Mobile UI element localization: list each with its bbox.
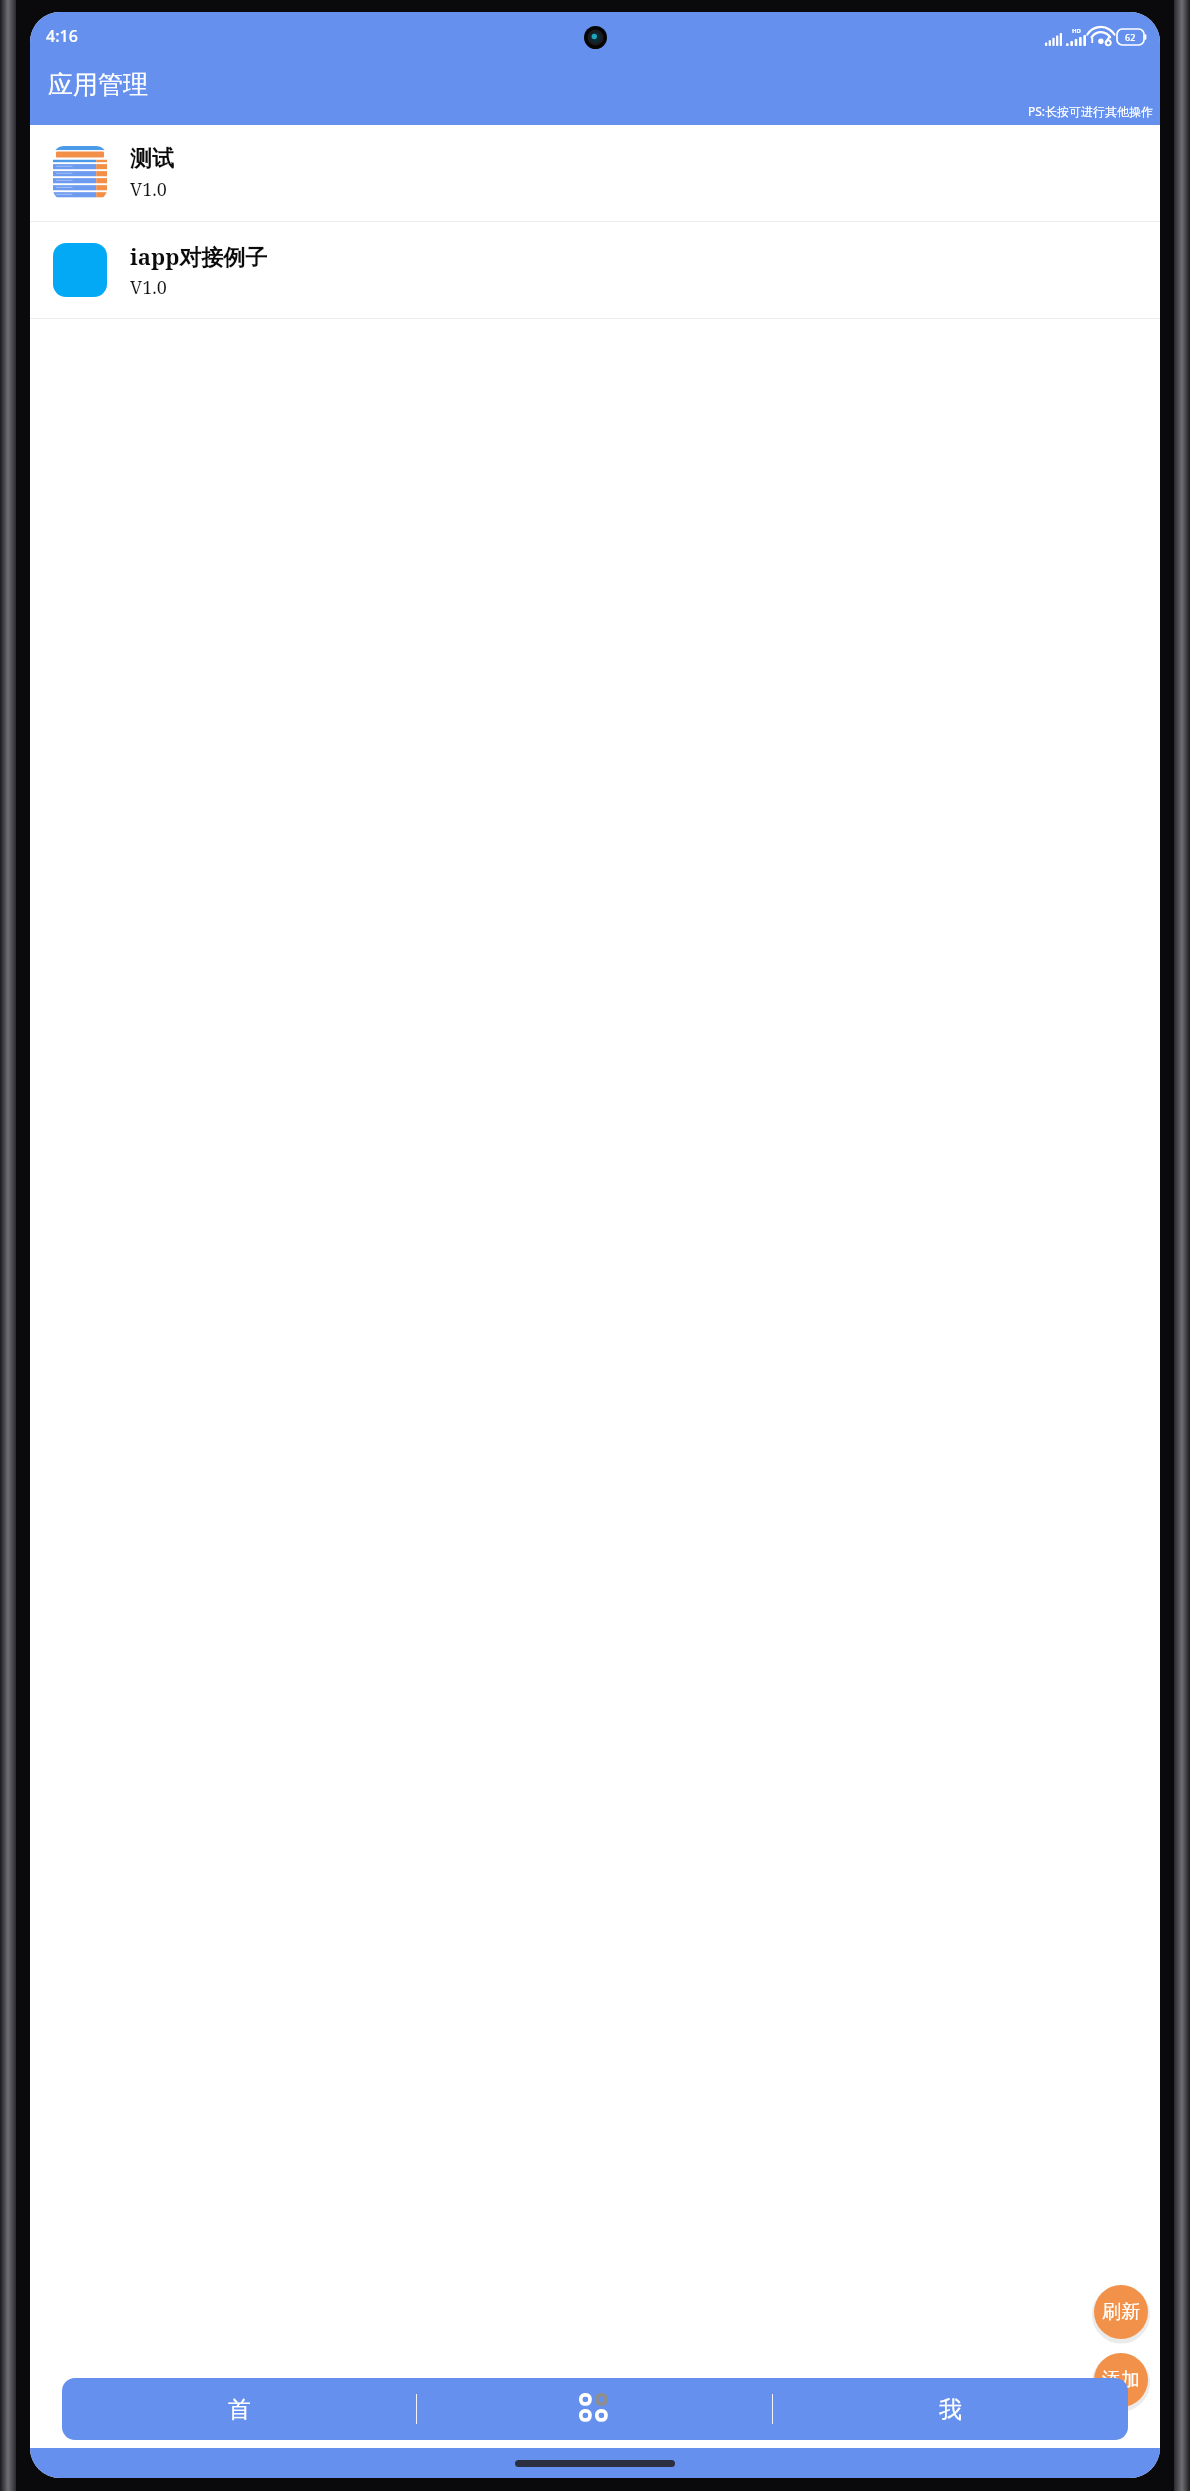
staticText: V1.0 xyxy=(130,177,167,202)
staticText: V1.0 xyxy=(130,275,167,300)
staticText: 测试 xyxy=(130,145,174,173)
staticText: PS:长按可进行其他操作 xyxy=(1028,103,1154,119)
staticText: 我 xyxy=(939,2395,962,2424)
button[interactable]: Apps xyxy=(417,2378,772,2440)
button[interactable]: 我 xyxy=(773,2378,1128,2440)
staticText: 首 xyxy=(228,2395,251,2424)
button[interactable]: 测试 xyxy=(30,125,1160,221)
button[interactable]: 首 xyxy=(62,2378,416,2440)
staticText: 刷新 xyxy=(1102,2300,1140,2324)
button[interactable]: 添加 xyxy=(1094,2353,1148,2407)
staticText: 应用管理 xyxy=(48,69,148,100)
staticText: HD xyxy=(1072,27,1081,35)
staticText: 62 xyxy=(1125,31,1136,43)
staticText: 添加 xyxy=(1102,2368,1140,2392)
staticText: iapp对接例子 xyxy=(130,241,268,271)
button[interactable]: iapp对接例子 xyxy=(30,222,1160,318)
button[interactable]: 刷新 xyxy=(1094,2285,1148,2339)
staticText: 4:16 xyxy=(46,25,78,47)
